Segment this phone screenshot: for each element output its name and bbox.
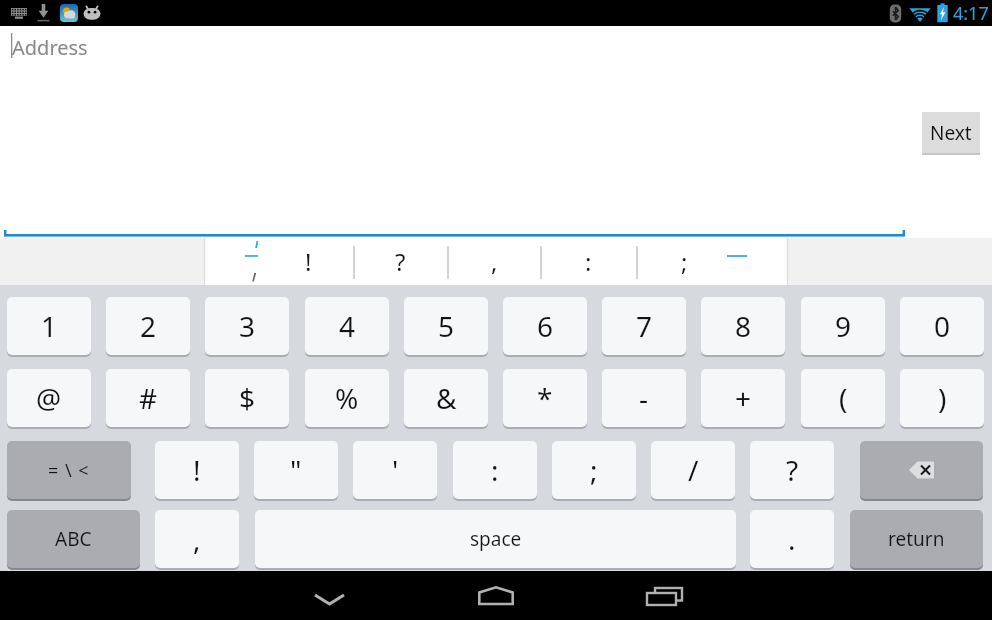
staticText: ; xyxy=(681,245,688,278)
staticText: - xyxy=(639,379,649,417)
staticText: : xyxy=(585,245,592,278)
staticText: 7 xyxy=(636,307,653,345)
staticText: ! xyxy=(193,451,201,489)
staticText: * xyxy=(537,379,553,417)
button[interactable]: @ xyxy=(7,369,91,427)
button[interactable]: Backspace xyxy=(860,441,983,499)
staticText: / xyxy=(688,451,699,489)
button[interactable]: 0 xyxy=(900,297,984,355)
button[interactable]: ! xyxy=(261,238,355,285)
button[interactable]: - xyxy=(602,369,686,427)
button[interactable]: % xyxy=(305,369,389,427)
button[interactable]: + xyxy=(701,369,785,427)
button[interactable]: 4 xyxy=(305,297,389,355)
button[interactable]: ) xyxy=(900,369,984,427)
button[interactable]: Em dash suggestion xyxy=(711,238,763,285)
button[interactable]: ? xyxy=(750,441,834,499)
button[interactable]: ? xyxy=(353,238,447,285)
button[interactable]: space xyxy=(255,510,736,568)
staticText: ( xyxy=(839,379,848,417)
button[interactable]: 8 xyxy=(701,297,785,355)
staticText: Address xyxy=(12,34,88,61)
button[interactable]: 5 xyxy=(404,297,488,355)
staticText: 3 xyxy=(239,307,256,345)
staticText: + xyxy=(735,379,752,417)
staticText: ? xyxy=(395,245,406,278)
button[interactable]: # xyxy=(106,369,190,427)
staticText: 8 xyxy=(735,307,752,345)
button[interactable]: , xyxy=(155,510,239,568)
button[interactable]: 1 xyxy=(7,297,91,355)
button[interactable]: Hide keyboard xyxy=(246,571,413,620)
staticText: & xyxy=(436,379,457,417)
staticText: 1 xyxy=(41,307,58,345)
staticText: 0 xyxy=(934,307,951,345)
button[interactable]: & xyxy=(404,369,488,427)
button[interactable]: * xyxy=(503,369,587,427)
button[interactable]: : xyxy=(453,441,537,499)
button[interactable]: = \ < xyxy=(7,441,131,499)
button[interactable]: $ xyxy=(205,369,289,427)
button[interactable]: Recent apps xyxy=(580,571,747,620)
button[interactable]: 2 xyxy=(106,297,190,355)
staticText: 4:17 xyxy=(953,1,989,26)
staticText: = \ < xyxy=(48,458,90,483)
staticText: . xyxy=(788,520,796,558)
staticText: ! xyxy=(305,245,312,278)
staticText: # xyxy=(139,379,158,417)
staticText: Next xyxy=(930,120,972,146)
staticText: 2 xyxy=(140,307,157,345)
button[interactable]: ! xyxy=(155,441,239,499)
button[interactable]: return xyxy=(850,510,983,568)
staticText: : xyxy=(491,451,499,489)
staticText: 4 xyxy=(339,307,356,345)
button[interactable]: , xyxy=(447,238,541,285)
staticText: % xyxy=(335,379,359,417)
staticText: ) xyxy=(938,379,947,417)
button[interactable]: ; xyxy=(552,441,636,499)
staticText: 6 xyxy=(537,307,554,345)
button[interactable]: ( xyxy=(801,369,885,427)
button[interactable]: Apostrophe suggestion xyxy=(228,238,283,285)
staticText: $ xyxy=(239,379,256,417)
staticText: , xyxy=(193,520,201,558)
staticText: return xyxy=(888,526,945,552)
staticText: @ xyxy=(36,379,62,417)
staticText: " xyxy=(290,451,302,489)
staticText: 9 xyxy=(835,307,852,345)
staticText: ? xyxy=(786,451,799,489)
button[interactable]: 7 xyxy=(602,297,686,355)
staticText: ABC xyxy=(55,526,92,552)
button[interactable]: Address xyxy=(0,26,992,66)
button[interactable]: " xyxy=(254,441,338,499)
staticText: space xyxy=(470,526,522,552)
staticText: ' xyxy=(392,451,399,489)
button[interactable]: 6 xyxy=(503,297,587,355)
button[interactable]: . xyxy=(750,510,834,568)
button[interactable]: Next xyxy=(922,112,980,153)
button[interactable]: ABC xyxy=(7,510,140,568)
button[interactable]: : xyxy=(541,238,635,285)
staticText: 5 xyxy=(438,307,455,345)
button[interactable]: ' xyxy=(353,441,437,499)
staticText: , xyxy=(491,245,498,278)
button[interactable]: 9 xyxy=(801,297,885,355)
button[interactable]: Home xyxy=(413,571,580,620)
button[interactable]: 3 xyxy=(205,297,289,355)
button[interactable]: / xyxy=(651,441,735,499)
button[interactable]: ; xyxy=(637,238,731,285)
staticText: ; xyxy=(590,451,598,489)
